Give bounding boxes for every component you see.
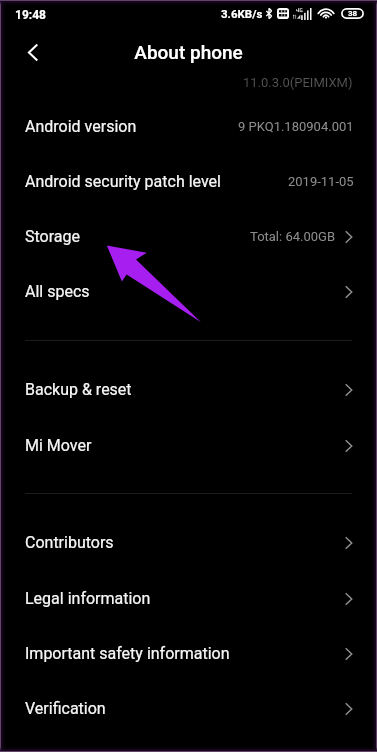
button[interactable]: Android version (0, 99, 377, 154)
staticText: Backup & reset (25, 380, 132, 399)
staticText: 11.0.3.0(PEIMIXM) (243, 75, 353, 90)
button[interactable]: Back (14, 33, 52, 71)
button[interactable]: Verification (0, 681, 377, 736)
staticText: 19:48 (15, 8, 46, 22)
button[interactable]: Storage (0, 209, 377, 264)
staticText: Total: 64.00GB (250, 229, 336, 244)
staticText: About phone (134, 41, 243, 63)
button[interactable]: Important safety information (0, 626, 377, 681)
staticText: 2019-11-05 (288, 174, 354, 189)
button[interactable]: Legal information (0, 571, 377, 626)
button[interactable]: Android security patch level (0, 154, 377, 209)
staticText: All specs (25, 282, 90, 301)
button[interactable]: All specs (0, 264, 377, 319)
staticText: Important safety information (25, 644, 230, 663)
staticText: Android security patch level (25, 172, 221, 191)
staticText: Storage (25, 227, 80, 246)
staticText: 3.6KB/s (221, 7, 263, 20)
button[interactable]: Contributors (0, 515, 377, 570)
staticText: Verification (25, 699, 106, 718)
staticText: Mi Mover (25, 436, 92, 455)
staticText: 9 PKQ1.180904.001 (238, 119, 354, 134)
button[interactable]: Backup & reset (0, 362, 377, 417)
staticText: 38 (348, 9, 358, 18)
staticText: Android version (25, 117, 137, 136)
staticText: Contributors (25, 533, 114, 552)
staticText: Legal information (25, 589, 151, 608)
button[interactable]: Mi Mover (0, 418, 377, 473)
